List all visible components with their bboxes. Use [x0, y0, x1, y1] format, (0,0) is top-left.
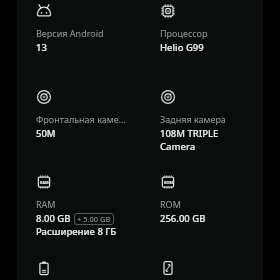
button[interactable]: Экран: [160, 257, 252, 280]
button[interactable]: Версия Android: [36, 0, 128, 72]
button[interactable]: Задняя камера: [160, 86, 252, 158]
button[interactable]: Батарея: [36, 257, 128, 280]
staticText: 50M: [36, 127, 56, 140]
button[interactable]: RAM: [36, 171, 128, 243]
button[interactable]: Фронтальная камера: [36, 86, 128, 158]
staticText: Задняя камера: [160, 113, 226, 125]
staticText: Процессор: [160, 27, 208, 39]
staticText: 8.00 GB: [36, 212, 71, 225]
button[interactable]: Процессор: [160, 0, 252, 72]
staticText: 13: [36, 41, 47, 54]
staticText: + 5.00 GB: [77, 214, 111, 224]
staticText: Версия Android: [36, 27, 104, 39]
staticText: ROM: [160, 198, 181, 210]
staticText: Helio G99: [160, 41, 204, 54]
staticText: 108M TRIPLE Camera: [160, 127, 252, 153]
staticText: RAM: [40, 180, 49, 185]
staticText: ROM: [164, 180, 174, 185]
button[interactable]: ROM: [160, 171, 252, 243]
staticText: RAM: [36, 198, 56, 210]
staticText: Расширение 8 ГБ: [36, 225, 117, 238]
staticText: 256.00 GB: [160, 212, 206, 225]
staticText: Фронтальная камера: [36, 113, 128, 125]
